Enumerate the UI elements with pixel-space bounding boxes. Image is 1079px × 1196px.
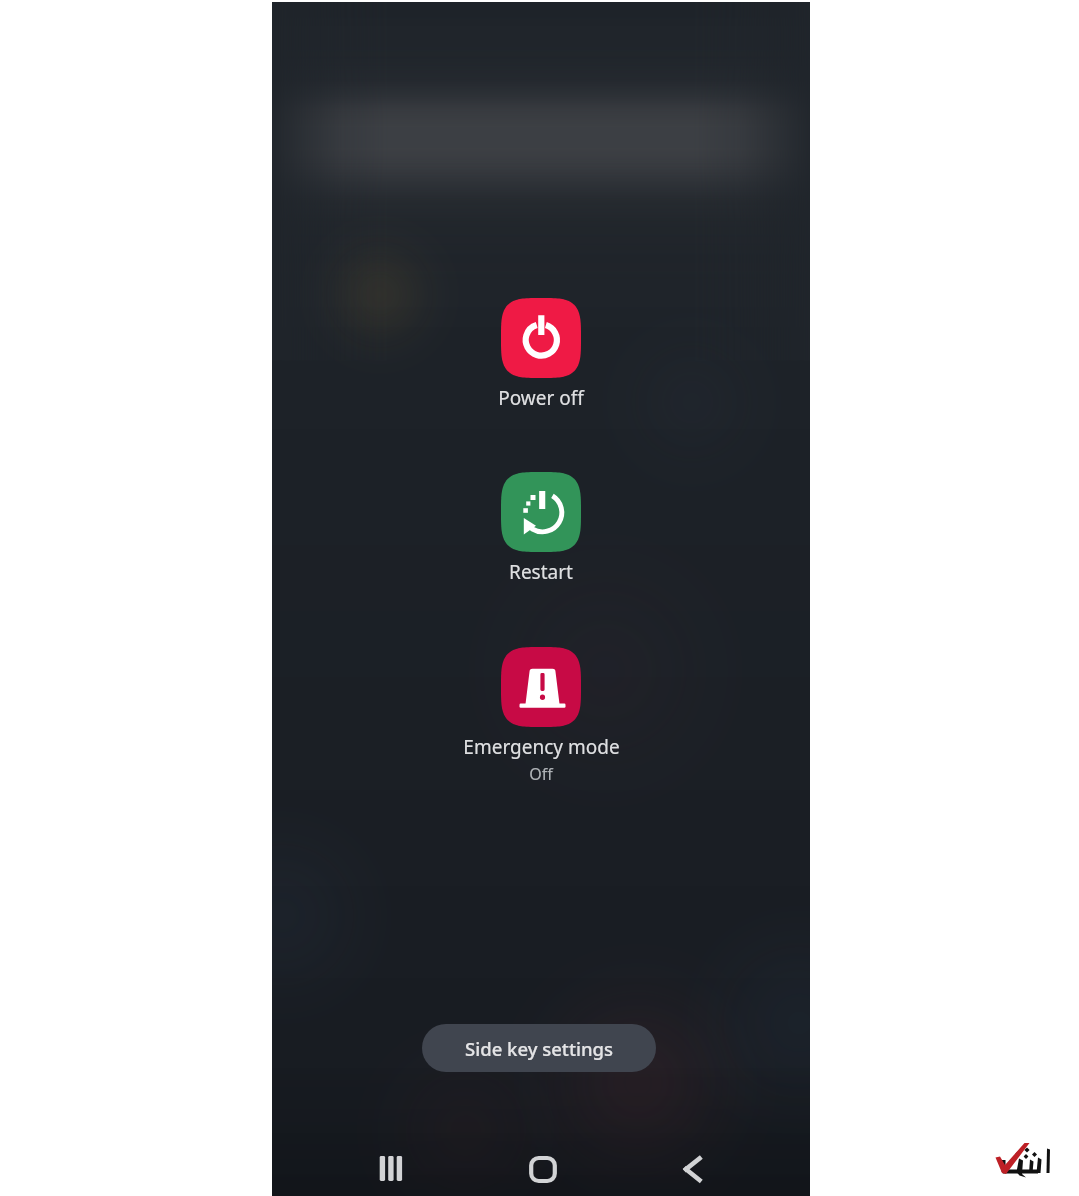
button[interactable]: Home xyxy=(519,1146,565,1192)
button[interactable]: Side key settings xyxy=(422,1024,656,1072)
button[interactable]: Recent apps xyxy=(368,1146,414,1192)
staticText: Power off xyxy=(498,385,584,411)
button[interactable]: Restart xyxy=(426,472,656,585)
button[interactable]: Power off xyxy=(426,298,656,411)
button[interactable]: Back xyxy=(670,1146,716,1192)
staticText: Side key settings xyxy=(465,1036,614,1061)
staticText: Emergency mode xyxy=(463,734,620,760)
button[interactable]: Emergency mode xyxy=(426,647,656,785)
staticText: Restart xyxy=(509,559,573,585)
staticText: Off xyxy=(529,763,553,785)
